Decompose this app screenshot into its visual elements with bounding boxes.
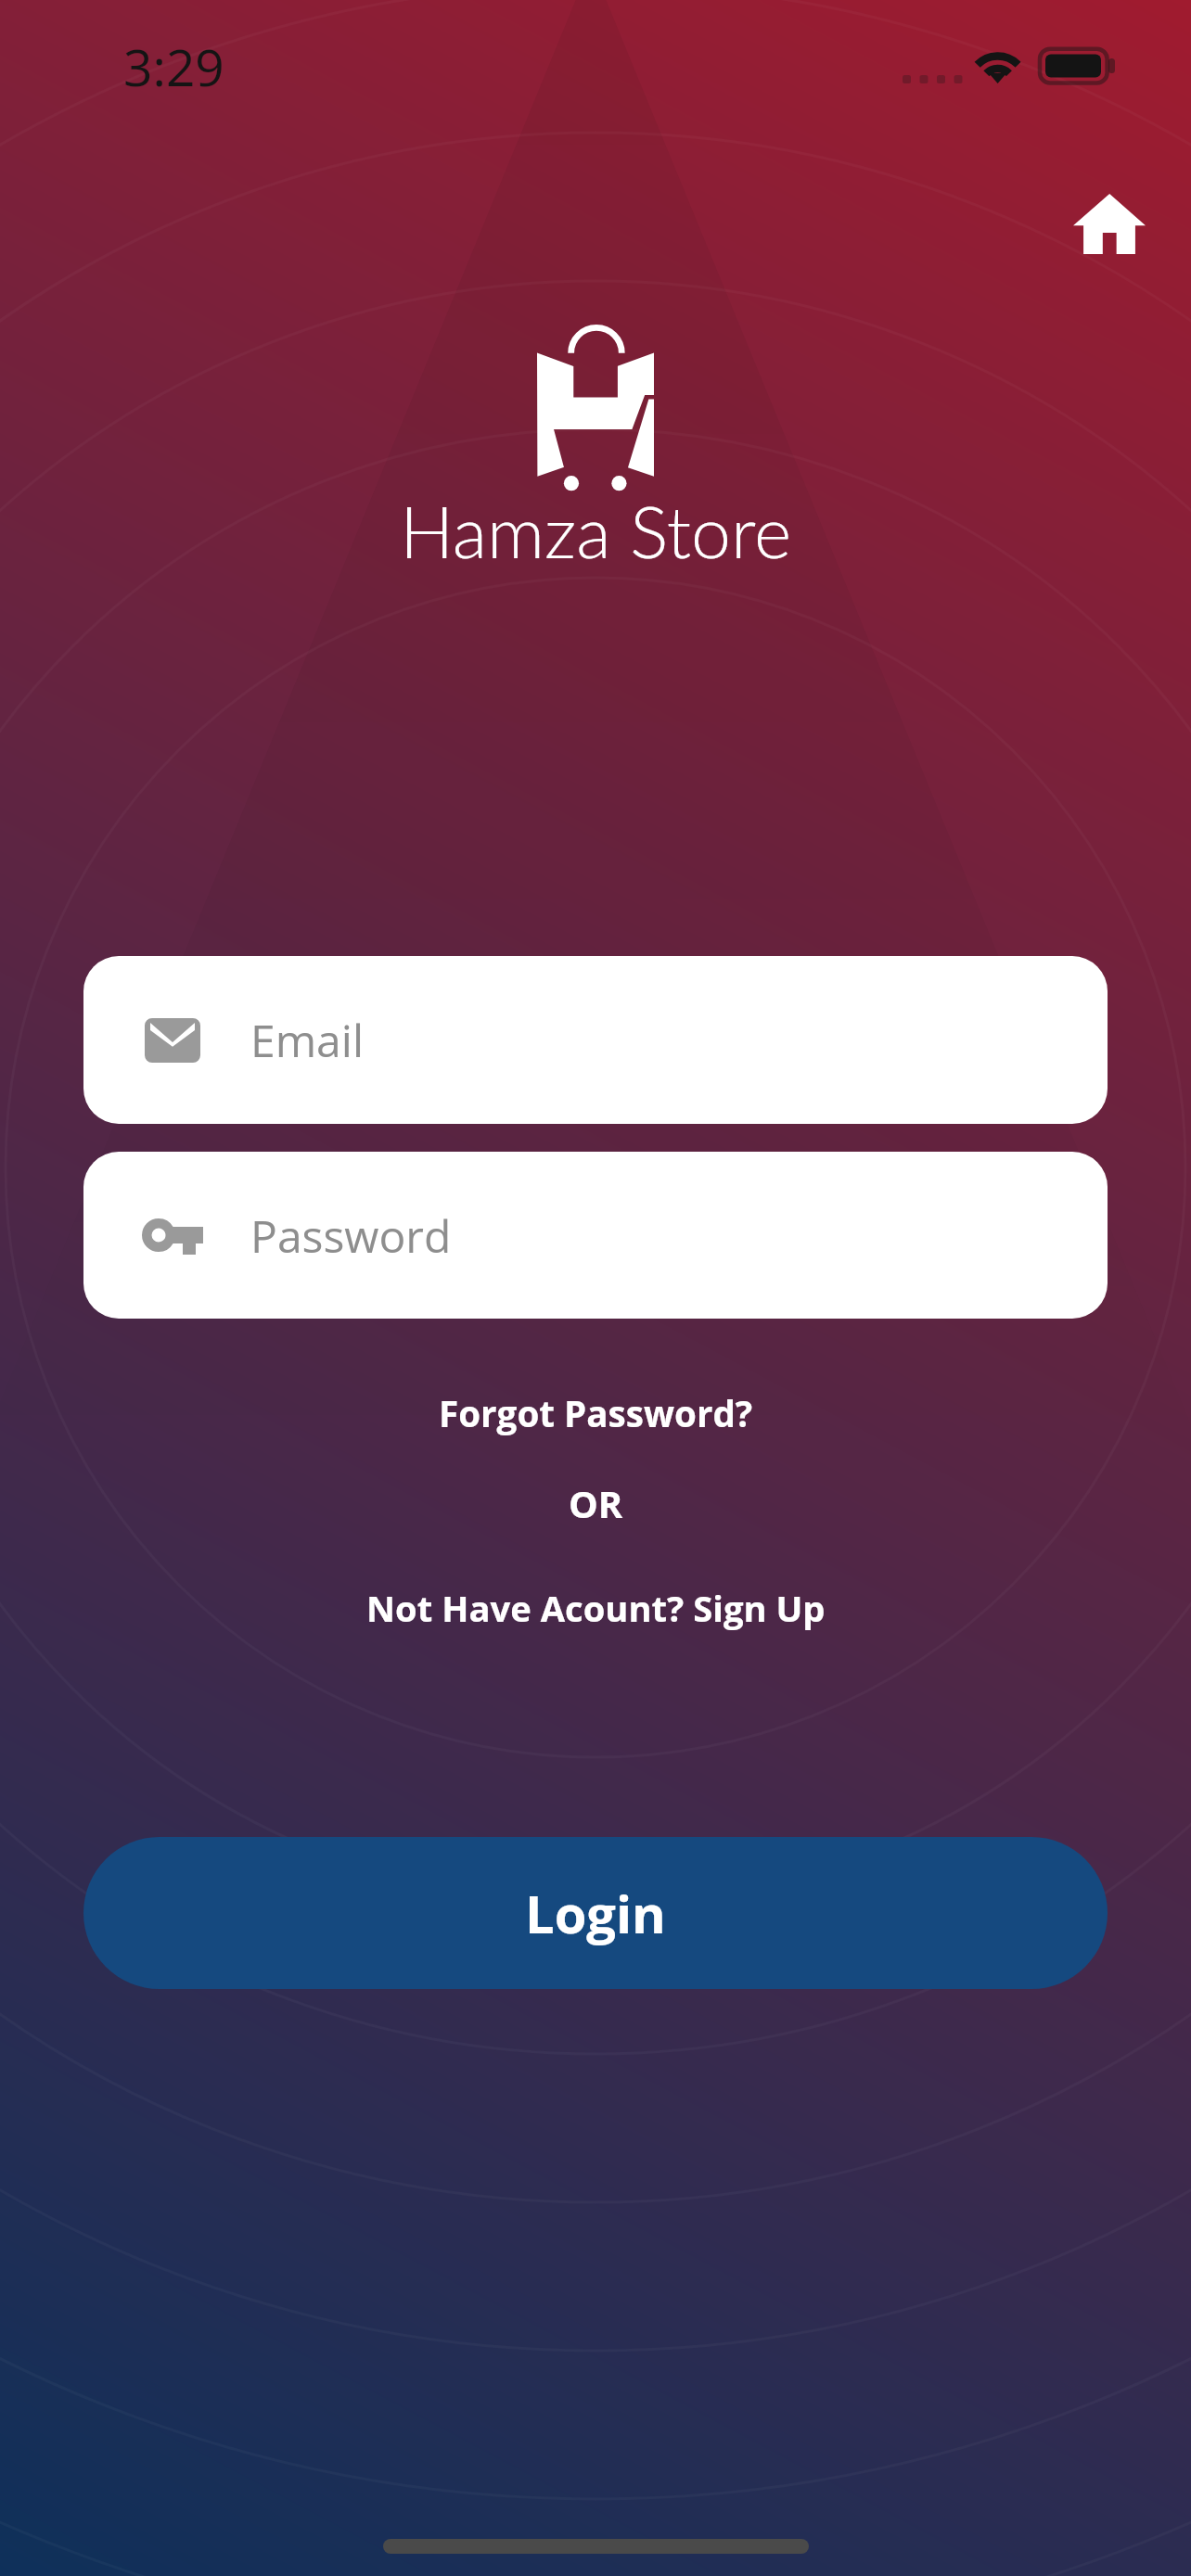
staticText: Password xyxy=(250,1205,452,1266)
staticText: 3:29 xyxy=(123,32,224,101)
staticText: Login xyxy=(525,1878,666,1948)
staticText: OR xyxy=(569,1478,623,1528)
button[interactable]: Forgot Password? xyxy=(0,1384,1191,1443)
button[interactable]: Password xyxy=(83,1152,1108,1319)
staticText: Forgot Password? xyxy=(439,1389,753,1438)
button[interactable]: Home xyxy=(1057,172,1161,275)
button[interactable]: Login xyxy=(83,1837,1108,1989)
staticText: Not Have Acount? Sign Up xyxy=(366,1584,826,1632)
staticText: Hamza Store xyxy=(400,488,792,573)
button[interactable]: Not Have Acount? Sign Up xyxy=(0,1578,1191,1638)
button[interactable]: Email xyxy=(83,956,1108,1124)
button[interactable]: OR xyxy=(0,1473,1191,1533)
staticText: Email xyxy=(250,1010,365,1070)
